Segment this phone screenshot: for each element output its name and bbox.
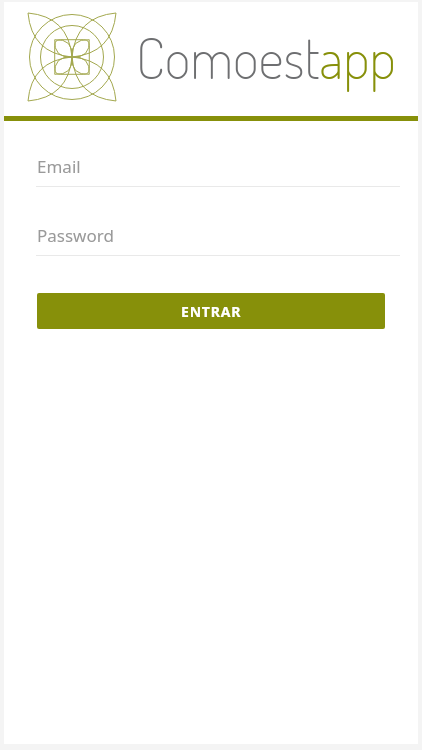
staticText: Comoestapp [136, 21, 396, 92]
staticText: ENTRAR [181, 302, 242, 321]
staticText: Password [37, 224, 114, 247]
staticText: Email [37, 155, 81, 178]
button[interactable]: ENTRAR [37, 293, 385, 329]
